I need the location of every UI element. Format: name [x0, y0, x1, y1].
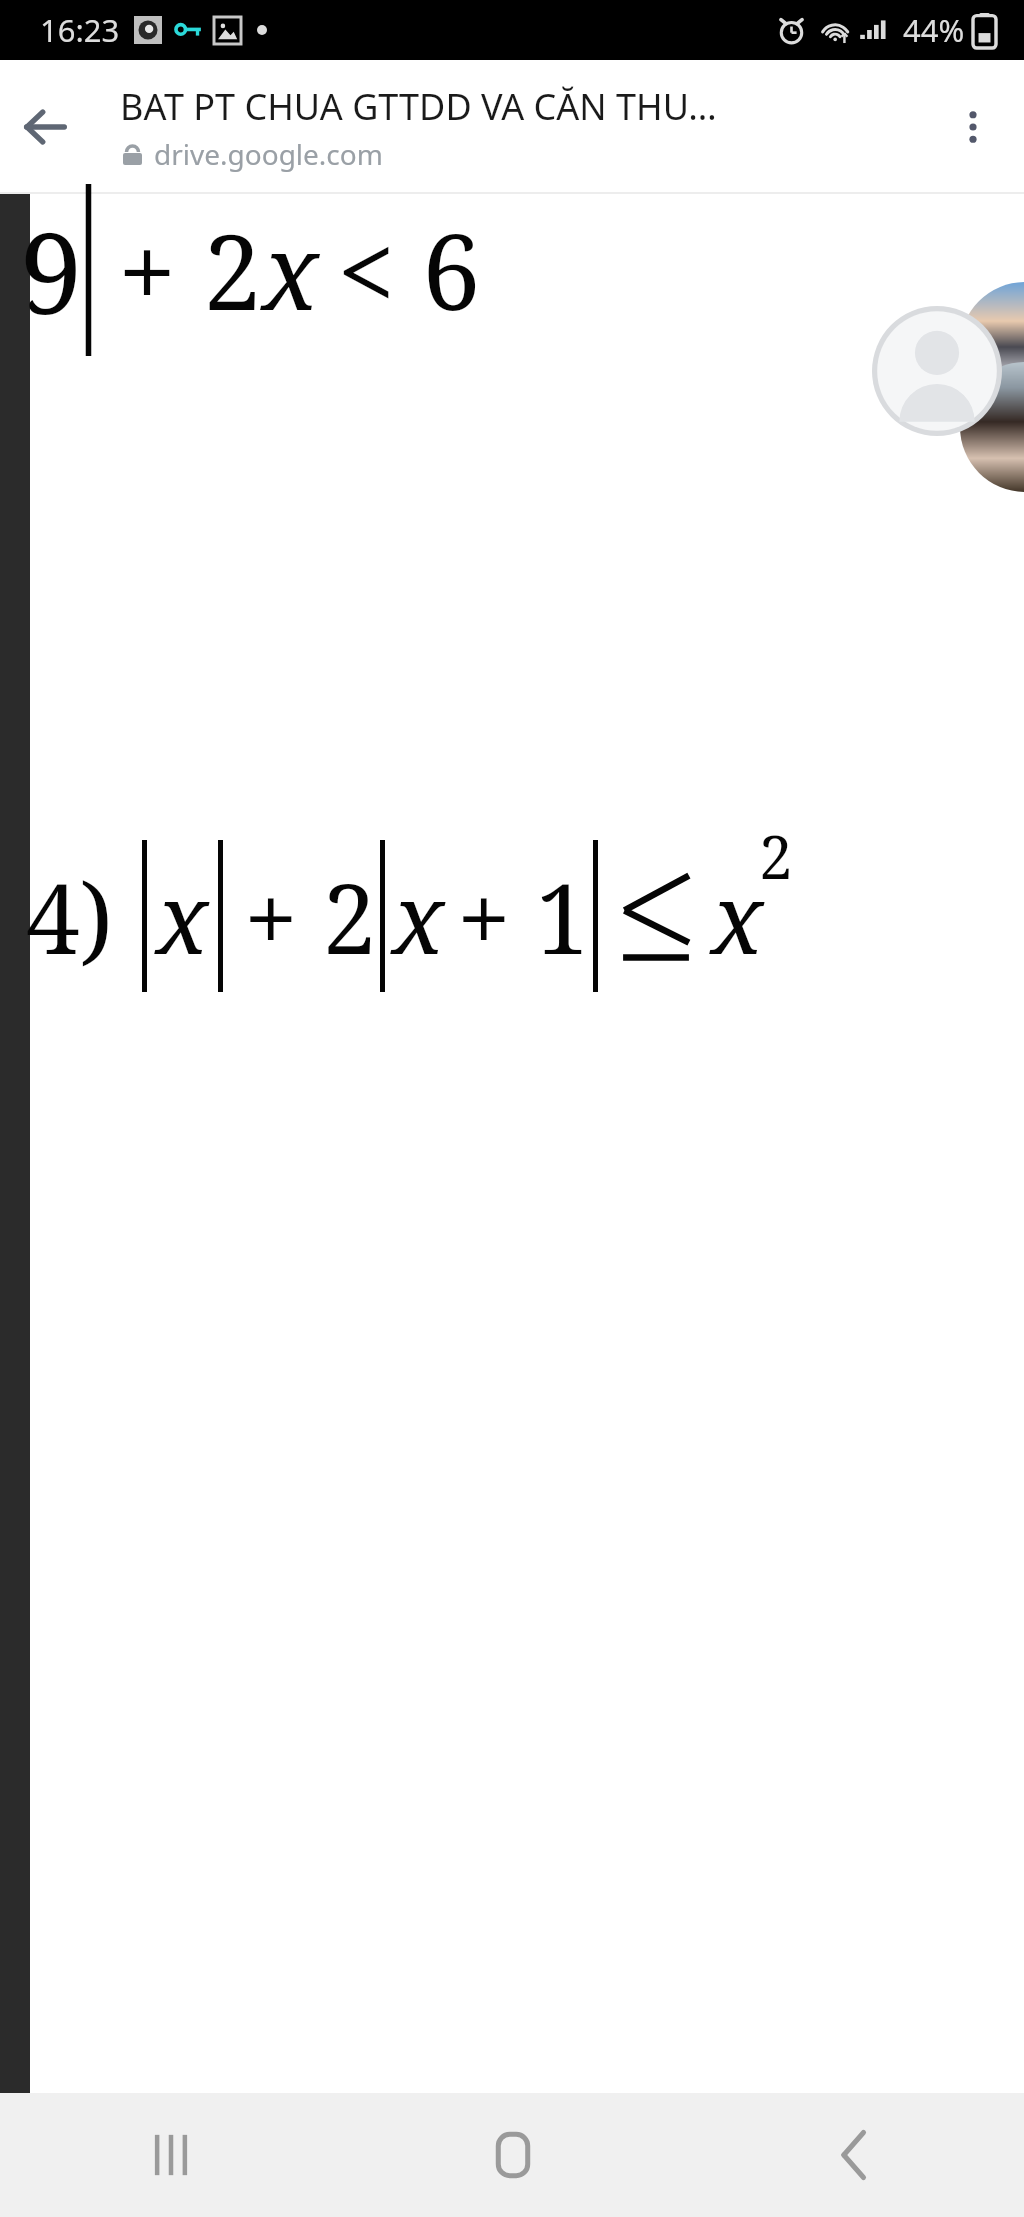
staticText: 16:23	[40, 9, 120, 51]
button[interactable]: Recent apps	[0, 2093, 342, 2217]
staticText: x	[711, 851, 764, 982]
staticText: BAT PT CHUA GTTDD VA CĂN THU…	[120, 82, 717, 131]
staticText: x	[156, 851, 209, 982]
button[interactable]: Collaborator avatar	[960, 282, 1024, 412]
button[interactable]: Back	[6, 88, 84, 166]
button[interactable]: BAT PT CHUA GTTDD VA CĂN THU…	[120, 82, 717, 173]
button[interactable]: Back	[683, 2093, 1024, 2217]
staticText: x	[262, 199, 319, 341]
staticText: < 6	[337, 199, 481, 341]
staticText: 44%	[903, 9, 965, 51]
button[interactable]: More options	[934, 88, 1012, 166]
staticText: + 1	[457, 851, 590, 982]
staticText: + 2	[118, 199, 262, 341]
button[interactable]: Anonymous viewer	[872, 306, 1002, 436]
button[interactable]: Collaborator avatar	[960, 362, 1024, 492]
staticText: 2	[759, 815, 793, 897]
button[interactable]: Home	[342, 2093, 683, 2217]
staticText: 9	[20, 194, 83, 347]
staticText: x	[392, 851, 445, 982]
staticText: 4)	[26, 851, 113, 982]
staticText: + 2	[244, 851, 377, 982]
staticText: drive.google.com	[154, 135, 383, 173]
